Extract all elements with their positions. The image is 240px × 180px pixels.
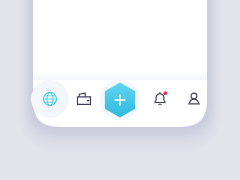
button[interactable]: Notifications [143, 80, 177, 127]
button[interactable]: Wallet [67, 80, 101, 127]
button[interactable]: Add [101, 80, 139, 127]
button[interactable]: Profile [177, 80, 211, 127]
button[interactable]: Explore [33, 80, 67, 127]
